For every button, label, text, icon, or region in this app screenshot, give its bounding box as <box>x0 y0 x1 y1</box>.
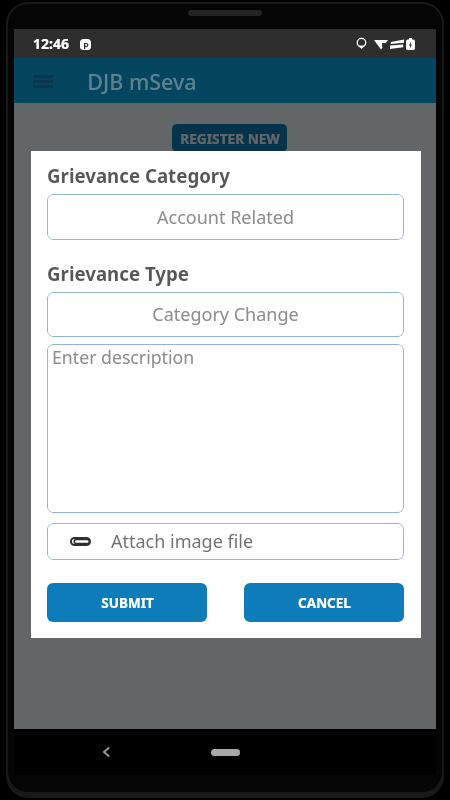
staticText: Enter description <box>52 345 195 369</box>
button[interactable]: Attach image file <box>47 523 404 560</box>
staticText: 12:46 <box>33 34 69 53</box>
staticText: Grievance Type <box>47 261 404 286</box>
staticText: Grievance Category <box>47 163 404 188</box>
button[interactable]: Back <box>102 746 111 758</box>
button[interactable]: CANCEL <box>244 583 404 622</box>
staticText: Account Related <box>157 205 294 230</box>
button[interactable]: Account Related <box>47 194 404 240</box>
staticText: Attach image file <box>111 529 254 554</box>
staticText: DJB mSeva <box>87 67 197 96</box>
button[interactable]: Open navigation menu <box>33 75 53 88</box>
staticText: SUBMIT <box>101 594 154 612</box>
button[interactable]: Home <box>211 749 240 756</box>
staticText: REGISTER NEW <box>180 129 280 148</box>
button[interactable]: Category Change <box>47 292 404 337</box>
button[interactable]: REGISTER NEW <box>172 124 287 152</box>
staticText: CANCEL <box>298 594 351 612</box>
button[interactable]: Enter description <box>47 344 404 513</box>
button[interactable]: SUBMIT <box>47 583 207 622</box>
staticText: Category Change <box>152 302 299 327</box>
staticText: P <box>83 39 89 50</box>
